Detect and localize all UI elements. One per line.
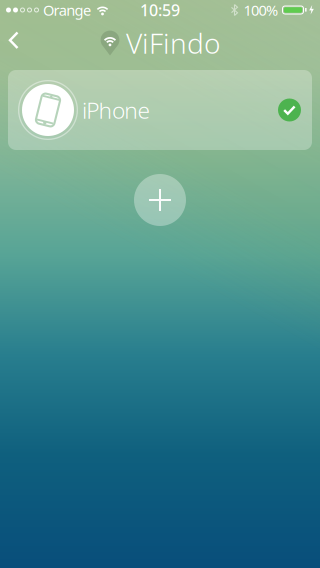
button[interactable]: iPhone	[8, 70, 312, 150]
staticText: 100%	[243, 0, 278, 20]
button[interactable]: Back	[0, 20, 24, 64]
staticText: iPhone	[82, 95, 150, 125]
staticText: 10:59	[140, 0, 180, 21]
staticText: Orange	[43, 0, 91, 20]
button[interactable]: Add device	[134, 174, 186, 226]
staticText: ViFindo	[126, 24, 221, 62]
